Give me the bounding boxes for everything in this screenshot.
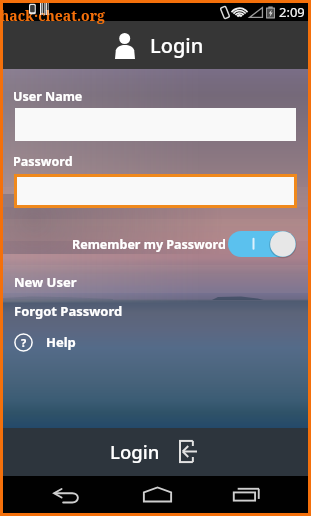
staticText: Forgot Password bbox=[14, 302, 123, 320]
button[interactable] bbox=[228, 231, 296, 257]
staticText: Help bbox=[46, 333, 76, 351]
button[interactable]: Back bbox=[41, 476, 90, 513]
staticText: Login bbox=[110, 439, 160, 464]
button[interactable]: Login bbox=[3, 428, 308, 476]
button[interactable]: Forgot Password bbox=[14, 302, 123, 320]
staticText: Password bbox=[13, 153, 73, 170]
staticText: 2:09 bbox=[279, 3, 305, 21]
staticText: hack·cheat.org bbox=[0, 6, 105, 25]
staticText: New User bbox=[14, 273, 77, 291]
staticText: Remember my Password bbox=[72, 236, 226, 253]
button[interactable]: ? bbox=[14, 332, 76, 352]
staticText: ? bbox=[21, 335, 27, 350]
button[interactable]: New User bbox=[14, 273, 77, 291]
staticText: User Name bbox=[13, 88, 83, 105]
button[interactable]: Recent apps bbox=[221, 476, 271, 513]
button[interactable]: Home bbox=[131, 476, 184, 513]
staticText: Login bbox=[150, 32, 204, 59]
